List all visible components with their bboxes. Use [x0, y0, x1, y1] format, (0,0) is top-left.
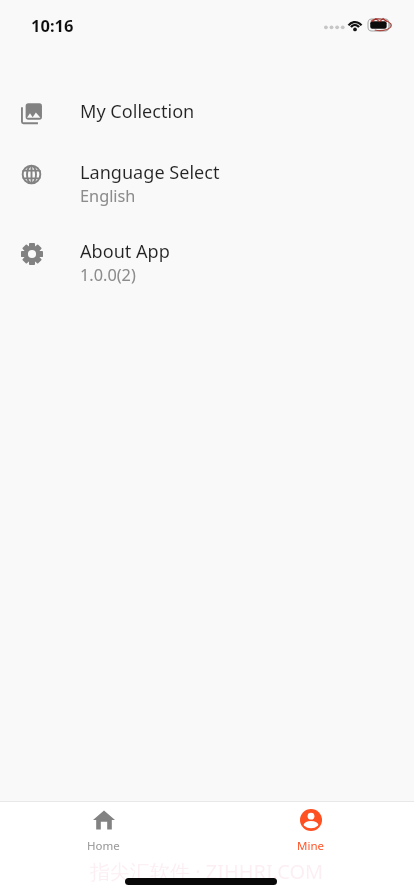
button[interactable]: About App [0, 221, 414, 311]
staticText: Home [87, 838, 120, 854]
button[interactable]: Language Select [0, 141, 414, 221]
staticText: Language Select [80, 160, 220, 185]
staticText: About App [80, 239, 170, 264]
staticText: English [80, 185, 136, 207]
staticText: My Collection [80, 99, 195, 124]
button[interactable]: My Collection [0, 84, 414, 141]
staticText: Mine [297, 838, 324, 854]
staticText: 1.0.0(2) [80, 264, 136, 286]
staticText: 10:16 [31, 14, 74, 36]
button[interactable]: Home [0, 802, 207, 854]
button[interactable]: Mine [207, 802, 414, 854]
staticText: 指尖汇软件 · ZIHHRI.COM [90, 858, 324, 885]
